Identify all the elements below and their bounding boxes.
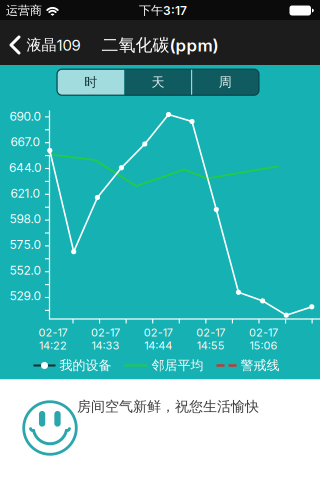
staticText: 02-17	[38, 326, 67, 339]
button[interactable]: 天	[124, 69, 192, 95]
staticText: 14:55	[197, 339, 225, 352]
staticText: 690.0	[9, 109, 41, 123]
button[interactable]: 时	[57, 69, 124, 95]
staticText: 552.0	[9, 263, 41, 277]
staticText: 02-17	[144, 326, 173, 339]
staticText: 644.0	[9, 160, 42, 175]
staticText: 14:22	[39, 339, 67, 352]
staticText: 时	[84, 74, 97, 90]
staticText: 周	[219, 74, 232, 90]
staticText: 621.0	[10, 186, 40, 200]
staticText: 598.0	[9, 212, 41, 226]
staticText: 14:44	[144, 339, 172, 352]
staticText: 02-17	[91, 326, 120, 339]
button[interactable]: 周	[192, 69, 259, 95]
staticText: 房间空气新鲜，祝您生活愉快	[77, 398, 259, 415]
staticText: 天	[151, 74, 164, 90]
staticText: 14:33	[92, 339, 120, 352]
staticText: 我的设备	[59, 357, 111, 373]
staticText: 529.0	[9, 289, 41, 303]
staticText: 15:06	[249, 339, 277, 352]
staticText: 575.0	[9, 237, 41, 252]
staticText: 警戒线	[240, 357, 279, 373]
button[interactable]: 液晶109	[6, 23, 84, 67]
staticText: 02-17	[249, 326, 278, 339]
staticText: 02-17	[196, 326, 225, 339]
staticText: 液晶109	[26, 36, 80, 54]
staticText: 下午3:17	[139, 3, 187, 18]
staticText: 667.0	[10, 135, 40, 149]
staticText: 二氧化碳(ppm)	[101, 35, 218, 55]
staticText: 运营商	[6, 3, 42, 18]
staticText: 邻居平均	[151, 357, 203, 373]
